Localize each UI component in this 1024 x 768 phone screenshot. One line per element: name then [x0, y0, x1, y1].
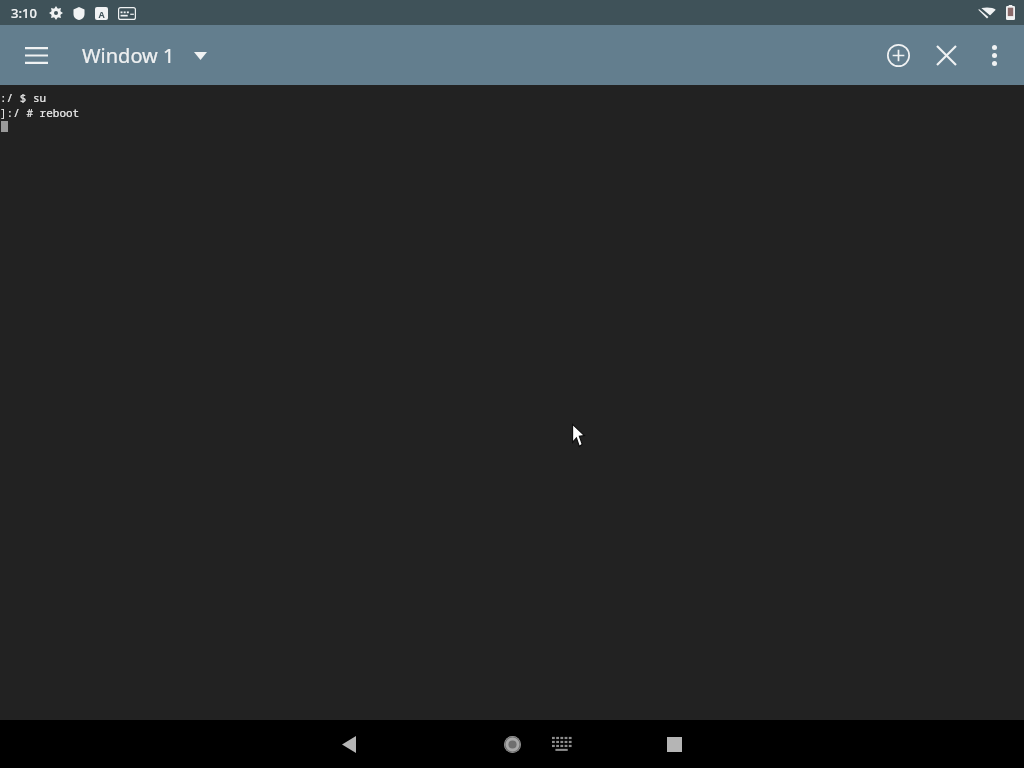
button[interactable]: Back	[325, 720, 373, 768]
staticText: :/ $ su	[0, 90, 47, 105]
staticText: 3:10	[11, 4, 37, 22]
button[interactable]: Close window	[922, 31, 970, 79]
button[interactable]: Recent apps	[650, 720, 698, 768]
staticText: Window 1	[82, 42, 175, 69]
button[interactable]: New window	[874, 31, 922, 79]
button[interactable]: Show keyboard	[538, 720, 586, 768]
staticText: A	[98, 8, 105, 20]
button[interactable]: Open navigation drawer	[12, 31, 60, 79]
button[interactable]: Home	[488, 720, 536, 768]
staticText: ]:/ # reboot	[0, 105, 80, 120]
button[interactable]: Window 1	[78, 34, 211, 77]
button[interactable]: More options	[970, 31, 1018, 79]
